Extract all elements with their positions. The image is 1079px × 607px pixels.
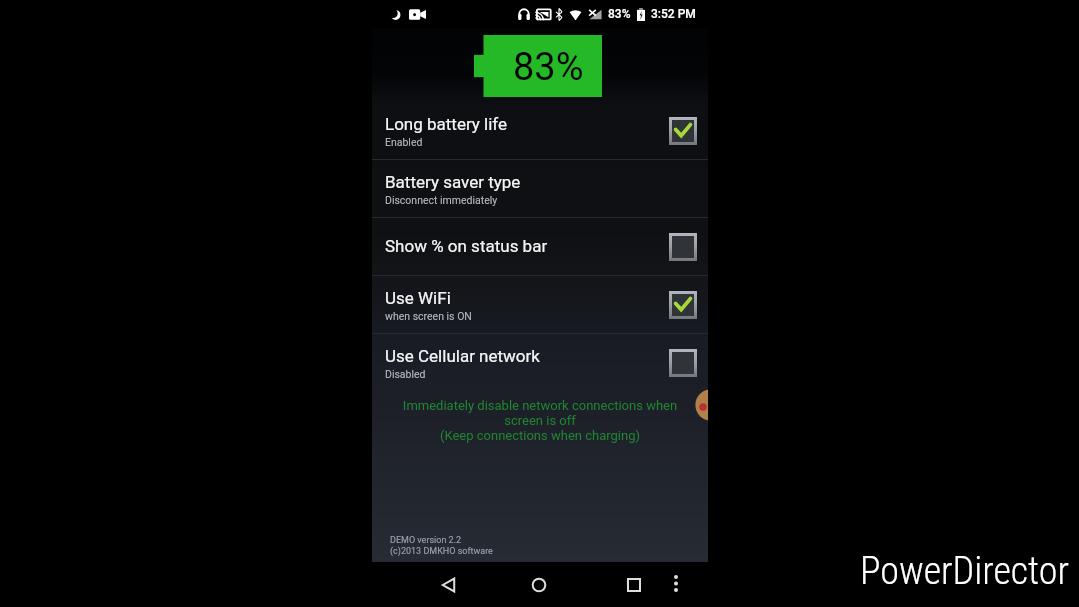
button[interactable]: Battery saver type [372, 160, 708, 217]
staticText: DEMO version 2.2 [390, 535, 462, 546]
button[interactable]: More options [660, 567, 692, 599]
staticText: (c)2013 DMKHO software [390, 546, 493, 557]
staticText: when screen is ON [385, 310, 472, 322]
button[interactable]: Back [430, 567, 466, 603]
staticText: Battery saver type [385, 172, 521, 192]
staticText: Use Cellular network [385, 346, 540, 366]
button[interactable]: Recent apps [616, 567, 652, 603]
button[interactable]: Use WiFi [372, 276, 708, 333]
button[interactable]: Use WiFi [668, 290, 697, 319]
staticText: Disconnect immediately [385, 194, 498, 206]
button[interactable]: Home [521, 567, 557, 603]
staticText: 83% [608, 7, 631, 21]
button[interactable]: Show % on status bar [668, 232, 697, 261]
staticText: Disabled [385, 368, 426, 380]
staticText: 3:52 PM [651, 7, 696, 21]
staticText: Immediately disable network connections … [394, 398, 686, 443]
staticText: Enabled [385, 136, 423, 148]
button[interactable]: Long battery life [668, 116, 697, 145]
button[interactable]: Long battery life [372, 102, 708, 159]
staticText: Use WiFi [385, 288, 451, 308]
staticText: Long battery life [385, 114, 508, 134]
button[interactable]: Show % on status bar [372, 218, 708, 275]
button[interactable]: Use Cellular network [372, 334, 708, 391]
staticText: 83% [513, 45, 584, 90]
staticText: PowerDirector [860, 549, 1069, 594]
staticText: Show % on status bar [385, 236, 548, 256]
button[interactable]: Use Cellular network [668, 348, 697, 377]
